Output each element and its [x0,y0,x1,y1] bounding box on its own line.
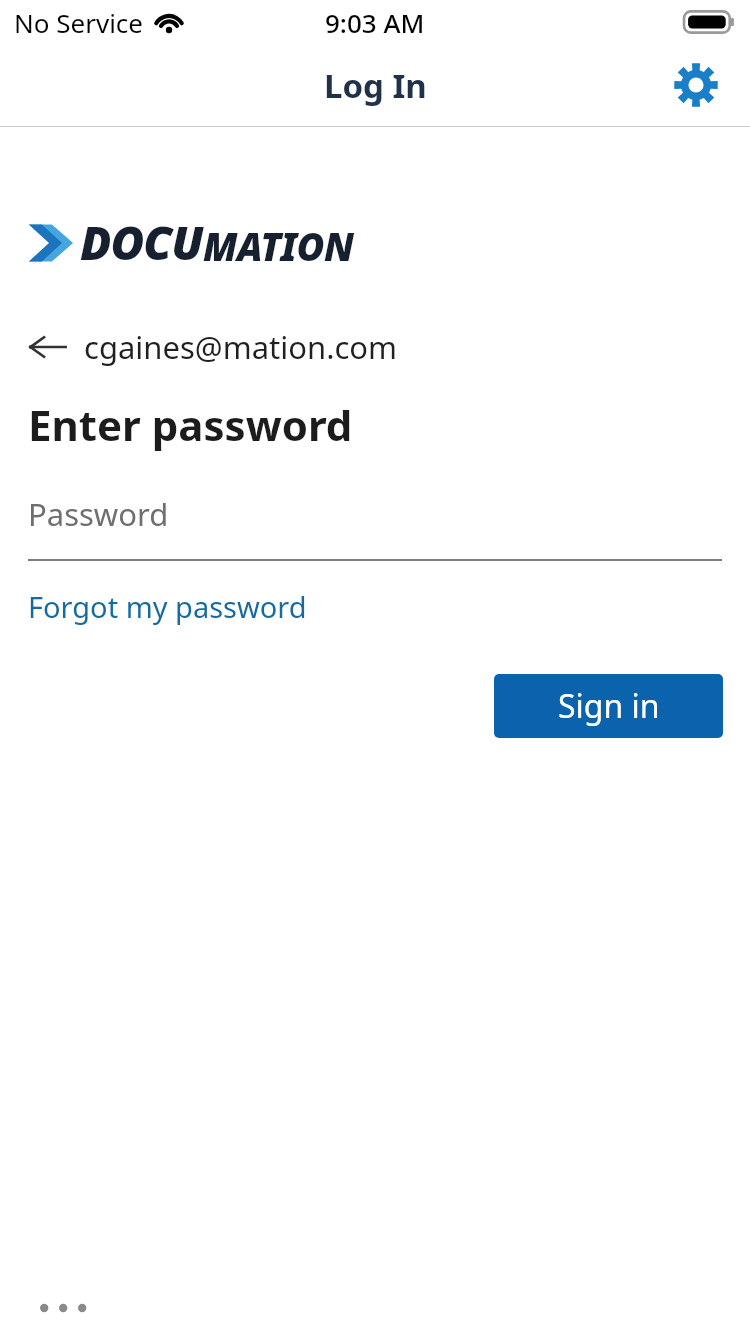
staticText: 9:03 AM [325,5,425,40]
staticText: DOCU [80,211,203,274]
button[interactable]: Sign in [494,674,723,738]
staticText: No Service [14,5,143,40]
button[interactable]: Password [28,493,722,561]
button[interactable]: Settings [670,59,722,111]
button[interactable]: Forgot my password [28,587,307,626]
button[interactable]: Back [28,326,750,368]
staticText: Enter password [28,396,353,453]
staticText: MATION [203,220,354,272]
staticText: Forgot my password [28,587,307,626]
staticText: Log In [324,63,427,108]
other: Back [28,329,68,365]
staticText: cgaines@mation.com [84,326,398,368]
staticText: Sign in [558,684,660,728]
staticText: Password [28,493,169,535]
